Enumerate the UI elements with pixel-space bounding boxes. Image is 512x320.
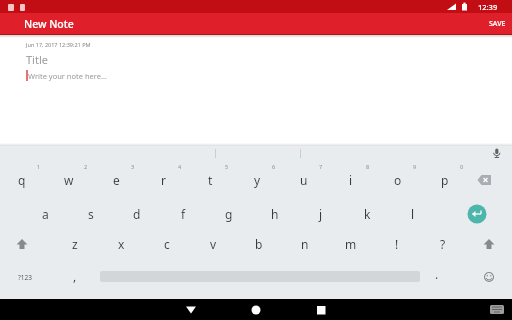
- button[interactable]: l: [393, 204, 433, 224]
- button[interactable]: o: [378, 170, 418, 190]
- button[interactable]: w: [49, 170, 89, 190]
- button[interactable]: [306, 300, 336, 320]
- button[interactable]: e: [96, 170, 136, 190]
- staticText: 4: [178, 163, 182, 170]
- staticText: q: [18, 172, 26, 188]
- staticText: 12:39: [478, 2, 498, 12]
- staticText: !: [395, 236, 399, 252]
- button[interactable]: Title: [26, 52, 146, 66]
- button[interactable]: [484, 300, 510, 320]
- staticText: l: [411, 206, 415, 222]
- staticText: 7: [319, 163, 323, 170]
- button[interactable]: s: [71, 204, 111, 224]
- button[interactable]: i: [331, 170, 371, 190]
- staticText: ,: [73, 268, 77, 284]
- button[interactable]: ?123: [8, 268, 42, 286]
- button[interactable]: u: [284, 170, 324, 190]
- staticText: 8: [366, 163, 370, 170]
- button[interactable]: k: [347, 204, 387, 224]
- staticText: 2: [84, 163, 88, 170]
- staticText: Write your note here...: [28, 71, 107, 81]
- button[interactable]: [176, 300, 206, 320]
- staticText: w: [64, 172, 74, 188]
- button[interactable]: t: [190, 170, 230, 190]
- staticText: 5: [225, 163, 229, 170]
- staticText: t: [208, 172, 213, 188]
- staticText: y: [254, 172, 261, 188]
- staticText: s: [88, 206, 94, 222]
- staticText: 6: [272, 163, 276, 170]
- staticText: b: [255, 236, 263, 252]
- button[interactable]: SAVE: [484, 13, 510, 35]
- staticText: New Note: [24, 17, 74, 31]
- button[interactable]: .: [427, 264, 447, 284]
- button[interactable]: Write your note here...: [28, 69, 188, 82]
- staticText: i: [349, 172, 353, 188]
- button[interactable]: [472, 160, 498, 180]
- button[interactable]: d: [117, 204, 157, 224]
- staticText: x: [118, 236, 125, 252]
- button[interactable]: m: [331, 234, 371, 254]
- button[interactable]: p: [425, 170, 465, 190]
- button[interactable]: j: [301, 204, 341, 224]
- staticText: .: [435, 266, 439, 282]
- staticText: Title: [26, 52, 48, 66]
- staticText: p: [441, 172, 449, 188]
- staticText: m: [345, 236, 357, 252]
- button[interactable]: c: [147, 234, 187, 254]
- staticText: v: [210, 236, 217, 252]
- button[interactable]: q: [2, 170, 42, 190]
- staticText: f: [181, 206, 186, 222]
- staticText: Jun 17, 2017 12:39:21 PM: [26, 41, 91, 48]
- button[interactable]: [241, 300, 271, 320]
- staticText: 9: [413, 163, 417, 170]
- button[interactable]: [466, 203, 488, 225]
- button[interactable]: y: [237, 170, 277, 190]
- button[interactable]: ?: [423, 234, 463, 254]
- staticText: SAVE: [489, 19, 506, 29]
- staticText: ?123: [18, 273, 32, 282]
- button[interactable]: x: [101, 234, 141, 254]
- staticText: 0: [460, 163, 464, 170]
- button[interactable]: n: [285, 234, 325, 254]
- button[interactable]: v: [193, 234, 233, 254]
- staticText: e: [113, 172, 120, 188]
- staticText: 3: [131, 163, 135, 170]
- button[interactable]: r: [143, 170, 183, 190]
- staticText: h: [271, 206, 279, 222]
- staticText: o: [394, 172, 402, 188]
- button[interactable]: g: [209, 204, 249, 224]
- staticText: j: [319, 206, 323, 222]
- staticText: a: [42, 206, 49, 222]
- staticText: n: [301, 236, 309, 252]
- button[interactable]: f: [163, 204, 203, 224]
- button[interactable]: h: [255, 204, 295, 224]
- staticText: z: [72, 236, 78, 252]
- staticText: u: [300, 172, 308, 188]
- button[interactable]: !: [377, 234, 417, 254]
- staticText: k: [364, 206, 371, 222]
- staticText: r: [161, 172, 166, 188]
- button[interactable]: a: [25, 204, 65, 224]
- staticText: d: [133, 206, 141, 222]
- staticText: g: [225, 206, 233, 222]
- staticText: 1: [37, 163, 41, 170]
- staticText: c: [164, 236, 170, 252]
- button[interactable]: z: [55, 234, 95, 254]
- button[interactable]: b: [239, 234, 279, 254]
- button[interactable]: ,: [65, 266, 85, 286]
- staticText: ?: [440, 236, 446, 252]
